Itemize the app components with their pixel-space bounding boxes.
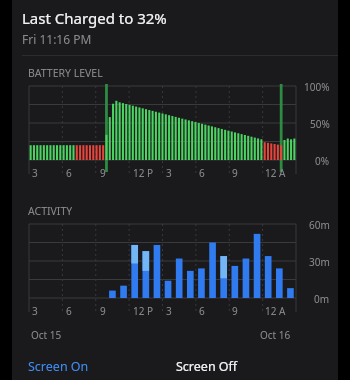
staticText: 6 bbox=[199, 304, 205, 318]
staticText: 12 P bbox=[133, 166, 154, 180]
staticText: 9 bbox=[232, 166, 238, 180]
staticText: Oct 15 bbox=[31, 328, 62, 342]
staticText: 0m bbox=[314, 292, 330, 306]
staticText: 6 bbox=[66, 304, 72, 318]
staticText: 9 bbox=[100, 304, 106, 318]
staticText: 9 bbox=[100, 166, 106, 180]
button[interactable]: Activity chart bbox=[12, 222, 338, 326]
staticText: Screen Off bbox=[176, 358, 238, 375]
staticText: 30m bbox=[309, 255, 330, 269]
staticText: 3 bbox=[166, 166, 172, 180]
staticText: 3 bbox=[32, 304, 38, 318]
staticText: 6 bbox=[199, 166, 205, 180]
staticText: 12 A bbox=[265, 304, 286, 318]
staticText: 6 bbox=[66, 166, 72, 180]
staticText: ACTIVITY bbox=[28, 204, 73, 218]
staticText: 9 bbox=[232, 304, 238, 318]
staticText: 3 bbox=[166, 304, 172, 318]
staticText: 100% bbox=[304, 80, 330, 94]
staticText: Fri 11:16 PM bbox=[22, 31, 92, 47]
staticText: BATTERY LEVEL bbox=[28, 66, 103, 80]
staticText: Screen On bbox=[28, 358, 89, 375]
button[interactable]: Last Charged to 32% bbox=[12, 0, 338, 53]
staticText: 12 P bbox=[133, 304, 154, 318]
button[interactable]: Screen Off bbox=[176, 358, 338, 380]
staticText: 0% bbox=[315, 154, 330, 168]
button[interactable]: Battery level chart bbox=[12, 84, 338, 188]
staticText: 50% bbox=[310, 117, 330, 131]
staticText: 3 bbox=[32, 166, 38, 180]
staticText: 60m bbox=[309, 218, 330, 232]
staticText: Oct 16 bbox=[260, 328, 291, 342]
staticText: 12 A bbox=[265, 166, 286, 180]
button[interactable]: Screen On bbox=[28, 358, 176, 380]
staticText: Last Charged to 32% bbox=[22, 8, 167, 28]
